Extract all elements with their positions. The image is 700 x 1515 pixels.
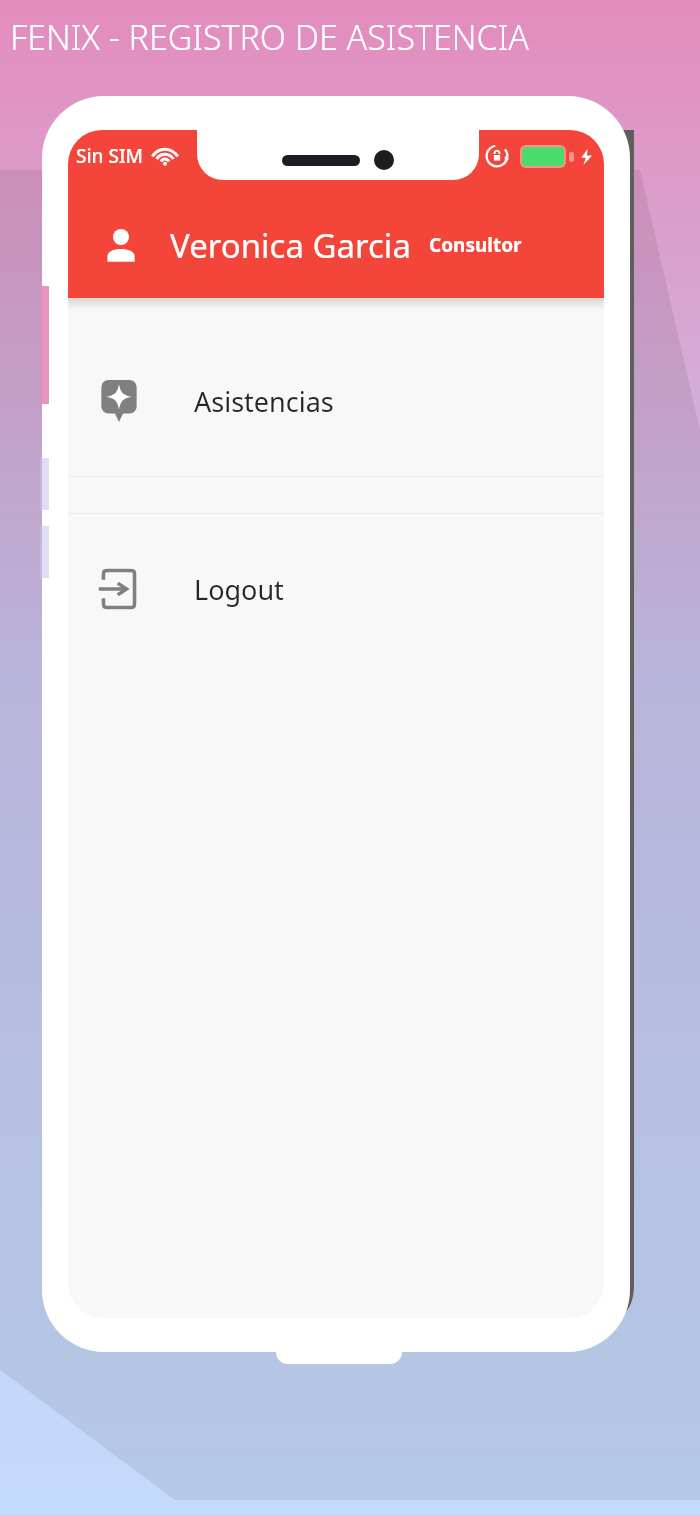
staticText: Logout — [194, 571, 284, 608]
staticText: Veronica Garcia — [170, 223, 411, 268]
staticText: Asistencias — [194, 383, 334, 420]
button[interactable]: Logout — [68, 514, 604, 664]
staticText: Consultor — [429, 232, 522, 258]
button[interactable]: Asistencias — [68, 326, 604, 476]
staticText: Sin SIM — [76, 143, 144, 169]
staticText: FENIX - REGISTRO DE ASISTENCIA — [10, 14, 700, 60]
button[interactable]: Perfil de usuario — [94, 218, 148, 272]
